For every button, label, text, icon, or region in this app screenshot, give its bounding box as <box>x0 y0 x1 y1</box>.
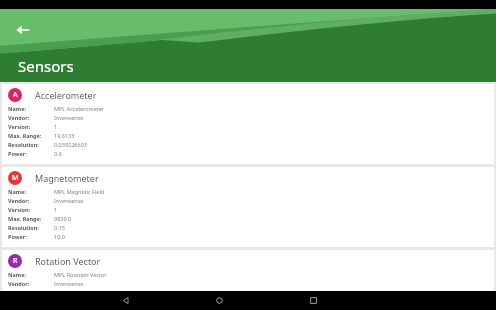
staticText: 0.0 <box>54 150 62 157</box>
staticText: Power: <box>8 150 27 157</box>
staticText: Name: <box>8 271 26 278</box>
staticText: 10.0 <box>54 233 65 240</box>
staticText: Version: <box>8 206 31 213</box>
staticText: 0.039226603 <box>54 141 87 148</box>
button[interactable]: A <box>2 84 494 164</box>
staticText: Max. Range: <box>8 215 42 222</box>
staticText: Invensense <box>54 197 84 204</box>
button[interactable]: R <box>2 250 494 291</box>
staticText: MPL Magnetic Field <box>54 188 105 195</box>
staticText: M <box>12 173 19 183</box>
staticText: 0.15 <box>54 224 65 231</box>
staticText: 19.6133 <box>54 132 75 139</box>
staticText: Magnetometer <box>35 172 99 184</box>
staticText: Max. Range: <box>8 132 42 139</box>
staticText: Invensense <box>54 280 84 287</box>
staticText: Power: <box>8 233 27 240</box>
staticText: Name: <box>8 105 26 112</box>
staticText: 9830.0 <box>54 215 72 222</box>
button[interactable]: Home <box>210 291 229 310</box>
staticText: Name: <box>8 188 26 195</box>
button[interactable]: Back <box>6 13 40 47</box>
staticText: Resolution: <box>8 224 39 231</box>
staticText: MPL Rotation Vector <box>54 271 107 278</box>
staticText: Accelerometer <box>35 89 97 101</box>
staticText: Sensors <box>18 56 74 76</box>
staticText: Invensense <box>54 114 84 121</box>
staticText: Vendor: <box>8 197 30 204</box>
staticText: Vendor: <box>8 280 30 287</box>
staticText: A <box>13 90 18 100</box>
staticText: Rotation Vector <box>35 255 101 267</box>
staticText: MPL Accelerometer <box>54 105 105 112</box>
button[interactable]: Recent apps <box>304 291 323 310</box>
staticText: Resolution: <box>8 141 39 148</box>
staticText: Version: <box>8 123 31 130</box>
staticText: 1 <box>54 123 58 130</box>
button[interactable]: M <box>2 167 494 247</box>
staticText: Vendor: <box>8 114 30 121</box>
button[interactable]: Back <box>116 291 135 310</box>
staticText: R <box>13 256 18 266</box>
staticText: 1 <box>54 206 58 213</box>
